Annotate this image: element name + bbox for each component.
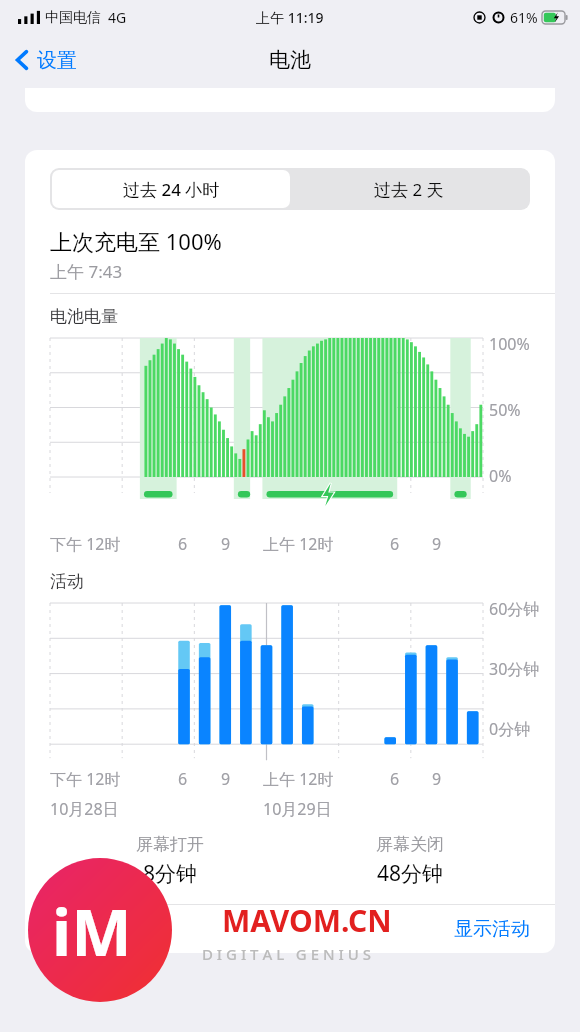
- button[interactable]: 过去 24 小时: [52, 170, 290, 208]
- staticText: 电池电量: [50, 306, 118, 327]
- staticText: 上午 11:19: [256, 8, 324, 27]
- staticText: 下午 12时: [50, 533, 121, 555]
- staticText: 屏幕关闭: [376, 834, 444, 855]
- staticText: 9: [221, 768, 231, 790]
- staticText: 9: [432, 533, 442, 555]
- button[interactable]: 过去 2 天: [290, 170, 528, 208]
- staticText: 6: [178, 768, 188, 790]
- staticText: 活动: [50, 571, 84, 592]
- staticText: 100%: [489, 333, 530, 355]
- staticText: 0分钟: [489, 718, 531, 740]
- button[interactable]: 显示电池电量: [25, 905, 555, 953]
- staticText: 61%: [510, 8, 538, 27]
- staticText: iM: [52, 888, 132, 975]
- staticText: 48分钟: [377, 859, 444, 888]
- staticText: 下午 12时: [50, 768, 121, 790]
- button[interactable]: 设置: [8, 43, 83, 77]
- staticText: 6: [178, 533, 188, 555]
- staticText: 屏幕打开: [136, 834, 204, 855]
- staticText: 过去 2 天: [374, 178, 444, 201]
- staticText: 设置: [37, 48, 77, 73]
- staticText: 上午 7:43: [50, 260, 123, 283]
- staticText: 4G: [108, 8, 127, 27]
- staticText: 9: [432, 768, 442, 790]
- staticText: 上午 12时: [263, 533, 334, 555]
- staticText: 0%: [489, 465, 512, 487]
- staticText: 60分钟: [489, 598, 540, 620]
- staticText: 6: [390, 768, 400, 790]
- staticText: 电池: [269, 47, 311, 73]
- staticText: 50%: [489, 399, 521, 421]
- staticText: 上午 12时: [263, 768, 334, 790]
- staticText: 显示活动: [454, 917, 530, 941]
- staticText: 10月29日: [263, 798, 332, 820]
- staticText: D I G I T A L G E N I U S: [202, 944, 371, 964]
- staticText: 10月28日: [50, 798, 119, 820]
- staticText: 显示电池电量: [50, 917, 164, 941]
- staticText: 中国电信: [45, 9, 101, 27]
- staticText: 9: [221, 533, 231, 555]
- staticText: 8分钟: [143, 859, 198, 888]
- staticText: 上次充电至 100%: [50, 226, 222, 256]
- staticText: 6: [390, 533, 400, 555]
- staticText: MAVOM.CN: [222, 900, 392, 941]
- staticText: 过去 24 小时: [123, 178, 220, 201]
- staticText: 30分钟: [489, 658, 540, 680]
